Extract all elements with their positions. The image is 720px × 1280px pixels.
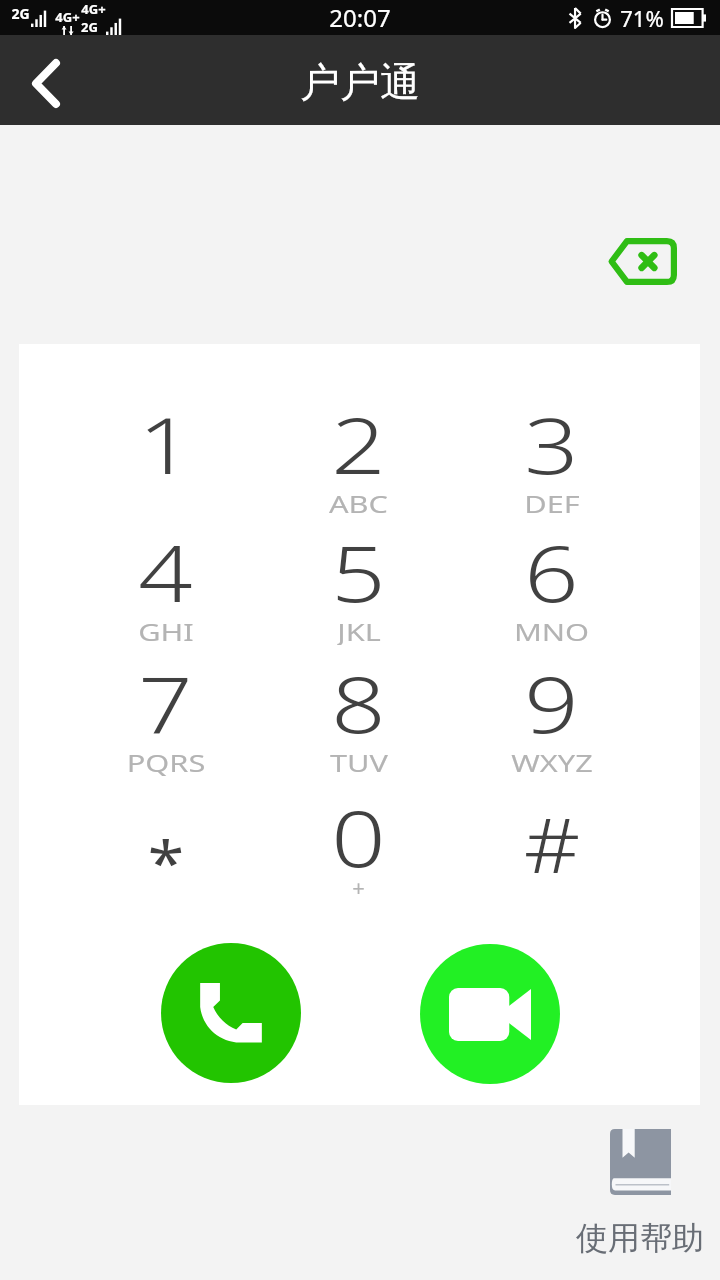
staticText: 户户通: [300, 57, 420, 107]
staticText: 5: [331, 519, 386, 625]
button[interactable]: Backspace: [598, 227, 686, 295]
staticText: 3: [524, 391, 579, 497]
button[interactable]: Call: [161, 943, 301, 1083]
staticText: 4: [138, 519, 193, 625]
button[interactable]: 6: [455, 516, 648, 644]
button[interactable]: Back: [0, 35, 92, 125]
staticText: GHI: [138, 615, 194, 645]
staticText: JKL: [337, 615, 381, 645]
staticText: MNO: [514, 615, 589, 645]
button[interactable]: 3: [455, 388, 648, 516]
staticText: PQRS: [126, 746, 206, 776]
staticText: TUV: [330, 746, 388, 776]
button[interactable]: 4: [69, 516, 262, 644]
button[interactable]: Video call: [420, 944, 560, 1084]
staticText: 7: [138, 650, 193, 756]
button[interactable]: 1: [69, 388, 262, 516]
staticText: 0: [331, 784, 386, 890]
button[interactable]: 0: [262, 764, 455, 892]
staticText: 2G: [11, 4, 30, 23]
staticText: #: [523, 792, 581, 896]
staticText: 4G+: [55, 8, 80, 26]
button[interactable]: 5: [262, 516, 455, 644]
staticText: ABC: [328, 487, 389, 517]
button[interactable]: 9: [455, 647, 648, 775]
staticText: 20:07: [329, 1, 391, 34]
button[interactable]: 2: [262, 388, 455, 516]
button[interactable]: 使用帮助: [562, 1129, 718, 1275]
staticText: WXYZ: [511, 746, 593, 776]
staticText: 使用帮助: [576, 1218, 704, 1258]
staticText: 71%: [620, 3, 664, 33]
staticText: +: [352, 872, 365, 902]
staticText: 4G+: [81, 0, 106, 18]
staticText: 9: [524, 650, 579, 756]
button[interactable]: 8: [262, 647, 455, 775]
staticText: 6: [524, 519, 579, 625]
staticText: 1: [138, 391, 193, 497]
staticText: 2: [331, 391, 386, 497]
staticText: *: [147, 821, 185, 903]
staticText: DEF: [524, 487, 580, 517]
button[interactable]: #: [455, 764, 648, 892]
staticText: 2G: [81, 18, 98, 35]
button[interactable]: 7: [69, 647, 262, 775]
staticText: 8: [331, 650, 386, 756]
button[interactable]: *: [69, 764, 262, 892]
